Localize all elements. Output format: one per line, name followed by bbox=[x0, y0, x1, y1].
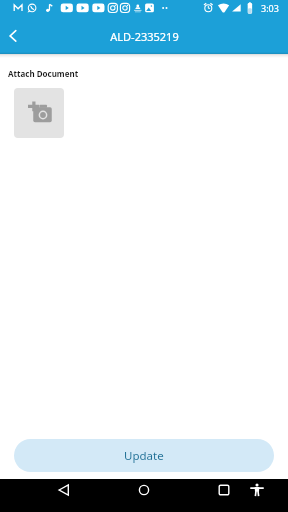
button[interactable]: Recents bbox=[213, 479, 235, 501]
staticText: Attach Document bbox=[8, 68, 79, 79]
staticText: 3:03 bbox=[261, 2, 279, 14]
button[interactable]: Back bbox=[53, 479, 75, 501]
button[interactable]: Accessibility bbox=[246, 479, 268, 501]
staticText: ALD-2335219 bbox=[110, 29, 179, 44]
staticText: Update bbox=[124, 448, 164, 464]
button[interactable]: Back bbox=[2, 23, 28, 49]
button[interactable]: Add photo bbox=[14, 88, 64, 138]
button[interactable]: Home bbox=[133, 479, 155, 501]
button[interactable]: Update bbox=[14, 439, 274, 472]
